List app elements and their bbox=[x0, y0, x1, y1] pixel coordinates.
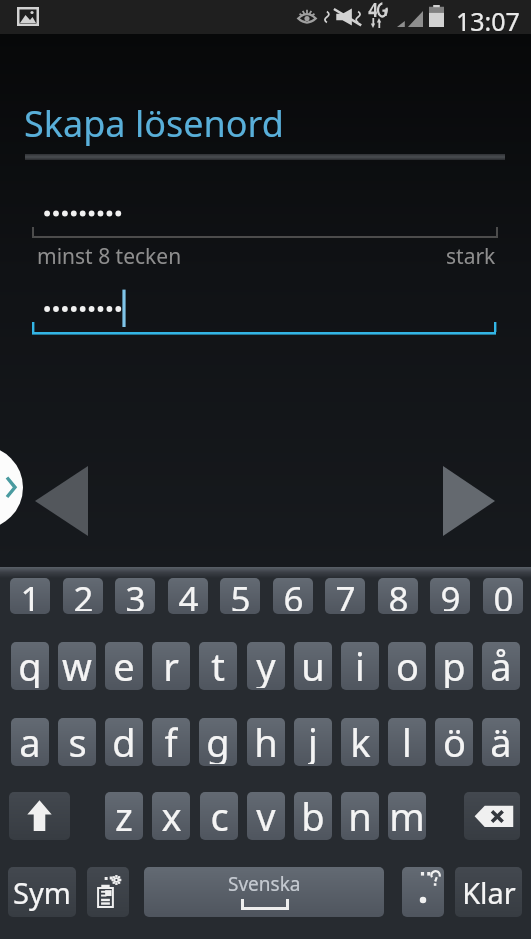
button[interactable]: Next field bbox=[443, 466, 495, 536]
staticText: 2 bbox=[73, 578, 94, 611]
staticText: b bbox=[301, 792, 325, 838]
button[interactable]: f bbox=[152, 718, 190, 766]
staticText: f bbox=[164, 718, 178, 764]
button[interactable]: b bbox=[294, 792, 332, 840]
button[interactable]: 6 bbox=[273, 578, 313, 614]
staticText: 4 bbox=[178, 578, 199, 611]
button[interactable]: c bbox=[200, 792, 238, 840]
staticText: p bbox=[442, 642, 466, 688]
staticText: å bbox=[490, 642, 512, 688]
button[interactable]: o bbox=[388, 642, 426, 690]
staticText: u bbox=[301, 642, 325, 688]
button[interactable]: g bbox=[199, 718, 237, 766]
button[interactable]: Period bbox=[402, 867, 444, 917]
button[interactable]: w bbox=[58, 642, 96, 690]
button[interactable]: k bbox=[341, 718, 379, 766]
button[interactable]: 4 bbox=[168, 578, 208, 614]
staticText: y bbox=[256, 642, 276, 688]
button[interactable]: x bbox=[152, 792, 190, 840]
staticText: minst 8 tecken bbox=[37, 242, 182, 271]
staticText: t bbox=[211, 642, 225, 688]
button[interactable]: ä bbox=[482, 718, 520, 766]
staticText: r bbox=[163, 642, 179, 688]
button[interactable]: 7 bbox=[325, 578, 365, 614]
button[interactable]: Previous field bbox=[35, 466, 88, 536]
button[interactable]: 1 bbox=[10, 578, 50, 614]
staticText: g bbox=[206, 718, 230, 764]
staticText: z bbox=[115, 792, 133, 838]
button[interactable]: m bbox=[388, 792, 426, 840]
staticText: n bbox=[348, 792, 372, 838]
button[interactable]: r bbox=[152, 642, 190, 690]
staticText: 5 bbox=[230, 578, 251, 611]
button[interactable]: h bbox=[247, 718, 285, 766]
staticText: stark bbox=[446, 242, 496, 271]
button[interactable]: 9 bbox=[430, 578, 470, 614]
staticText: c bbox=[210, 792, 229, 838]
staticText: k bbox=[350, 718, 371, 764]
button[interactable]: ö bbox=[435, 718, 473, 766]
staticText: Skapa lösenord bbox=[24, 99, 284, 148]
staticText: s bbox=[68, 718, 87, 764]
staticText: Sym bbox=[13, 873, 71, 912]
button[interactable]: å bbox=[482, 642, 520, 690]
button[interactable]: i bbox=[341, 642, 379, 690]
button[interactable]: Backspace bbox=[464, 792, 520, 840]
staticText: o bbox=[396, 642, 419, 688]
button[interactable]: u bbox=[294, 642, 332, 690]
staticText: 7 bbox=[335, 578, 356, 611]
staticText: Svenska bbox=[228, 871, 301, 897]
button[interactable]: Sym bbox=[8, 867, 76, 917]
button[interactable]: y bbox=[247, 642, 285, 690]
staticText: w bbox=[62, 642, 92, 688]
staticText: v bbox=[256, 792, 276, 838]
staticText: Klar bbox=[462, 873, 516, 912]
staticText: e bbox=[113, 642, 135, 688]
button[interactable]: d bbox=[105, 718, 143, 766]
button[interactable]: 2 bbox=[63, 578, 103, 614]
button[interactable]: 8 bbox=[378, 578, 418, 614]
button[interactable]: l bbox=[388, 718, 426, 766]
staticText: q bbox=[18, 642, 42, 688]
button[interactable]: t bbox=[199, 642, 237, 690]
staticText: 1 bbox=[20, 578, 41, 611]
button[interactable]: 5 bbox=[220, 578, 260, 614]
staticText: 6 bbox=[283, 578, 304, 611]
staticText: x bbox=[161, 792, 182, 838]
staticText: 0 bbox=[493, 578, 514, 611]
staticText: 9 bbox=[440, 578, 461, 611]
button[interactable]: Open assistant bbox=[0, 446, 23, 529]
button[interactable]: 0 bbox=[483, 578, 523, 614]
button[interactable]: a bbox=[11, 718, 49, 766]
staticText: h bbox=[254, 718, 278, 764]
button[interactable]: Keyboard settings bbox=[87, 867, 129, 917]
button[interactable]: n bbox=[341, 792, 379, 840]
staticText: 3 bbox=[125, 578, 146, 611]
button[interactable]: Shift bbox=[9, 792, 70, 840]
button[interactable]: p bbox=[435, 642, 473, 690]
staticText: d bbox=[112, 718, 136, 764]
button[interactable]: v bbox=[247, 792, 285, 840]
button[interactable]: s bbox=[58, 718, 96, 766]
button[interactable]: z bbox=[105, 792, 143, 840]
staticText: 8 bbox=[388, 578, 409, 611]
button[interactable]: q bbox=[11, 642, 49, 690]
button[interactable]: e bbox=[105, 642, 143, 690]
staticText: a bbox=[19, 718, 41, 764]
staticText: m bbox=[389, 792, 425, 838]
staticText: ä bbox=[490, 718, 512, 764]
staticText: l bbox=[402, 718, 412, 764]
staticText: ö bbox=[443, 718, 466, 764]
button[interactable]: Klar bbox=[455, 867, 522, 917]
staticText: i bbox=[355, 642, 365, 688]
button[interactable]: j bbox=[294, 718, 332, 766]
button[interactable]: Svenska bbox=[144, 867, 384, 917]
staticText: j bbox=[308, 718, 318, 764]
staticText: 13:07 bbox=[456, 4, 520, 38]
button[interactable]: 3 bbox=[115, 578, 155, 614]
